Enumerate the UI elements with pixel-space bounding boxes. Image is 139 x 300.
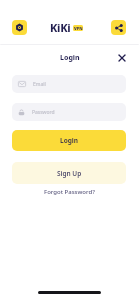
staticText: VPN bbox=[74, 26, 83, 31]
staticText: KiKi bbox=[50, 20, 71, 35]
button[interactable]: Password bbox=[12, 103, 126, 121]
button[interactable]: Close bbox=[116, 52, 128, 64]
staticText: Sign Up bbox=[57, 169, 82, 178]
button[interactable]: Login bbox=[12, 130, 126, 151]
staticText: Login bbox=[60, 136, 78, 145]
button[interactable]: Forgot Password? bbox=[40, 186, 99, 198]
button[interactable]: Email bbox=[12, 75, 126, 93]
staticText: Email bbox=[33, 81, 46, 88]
button[interactable]: Share bbox=[111, 20, 126, 35]
staticText: Password bbox=[32, 109, 55, 116]
button[interactable]: Settings bbox=[12, 20, 27, 35]
button[interactable]: Sign Up bbox=[12, 162, 126, 184]
staticText: Login bbox=[60, 53, 80, 63]
staticText: Forgot Password? bbox=[44, 188, 95, 196]
